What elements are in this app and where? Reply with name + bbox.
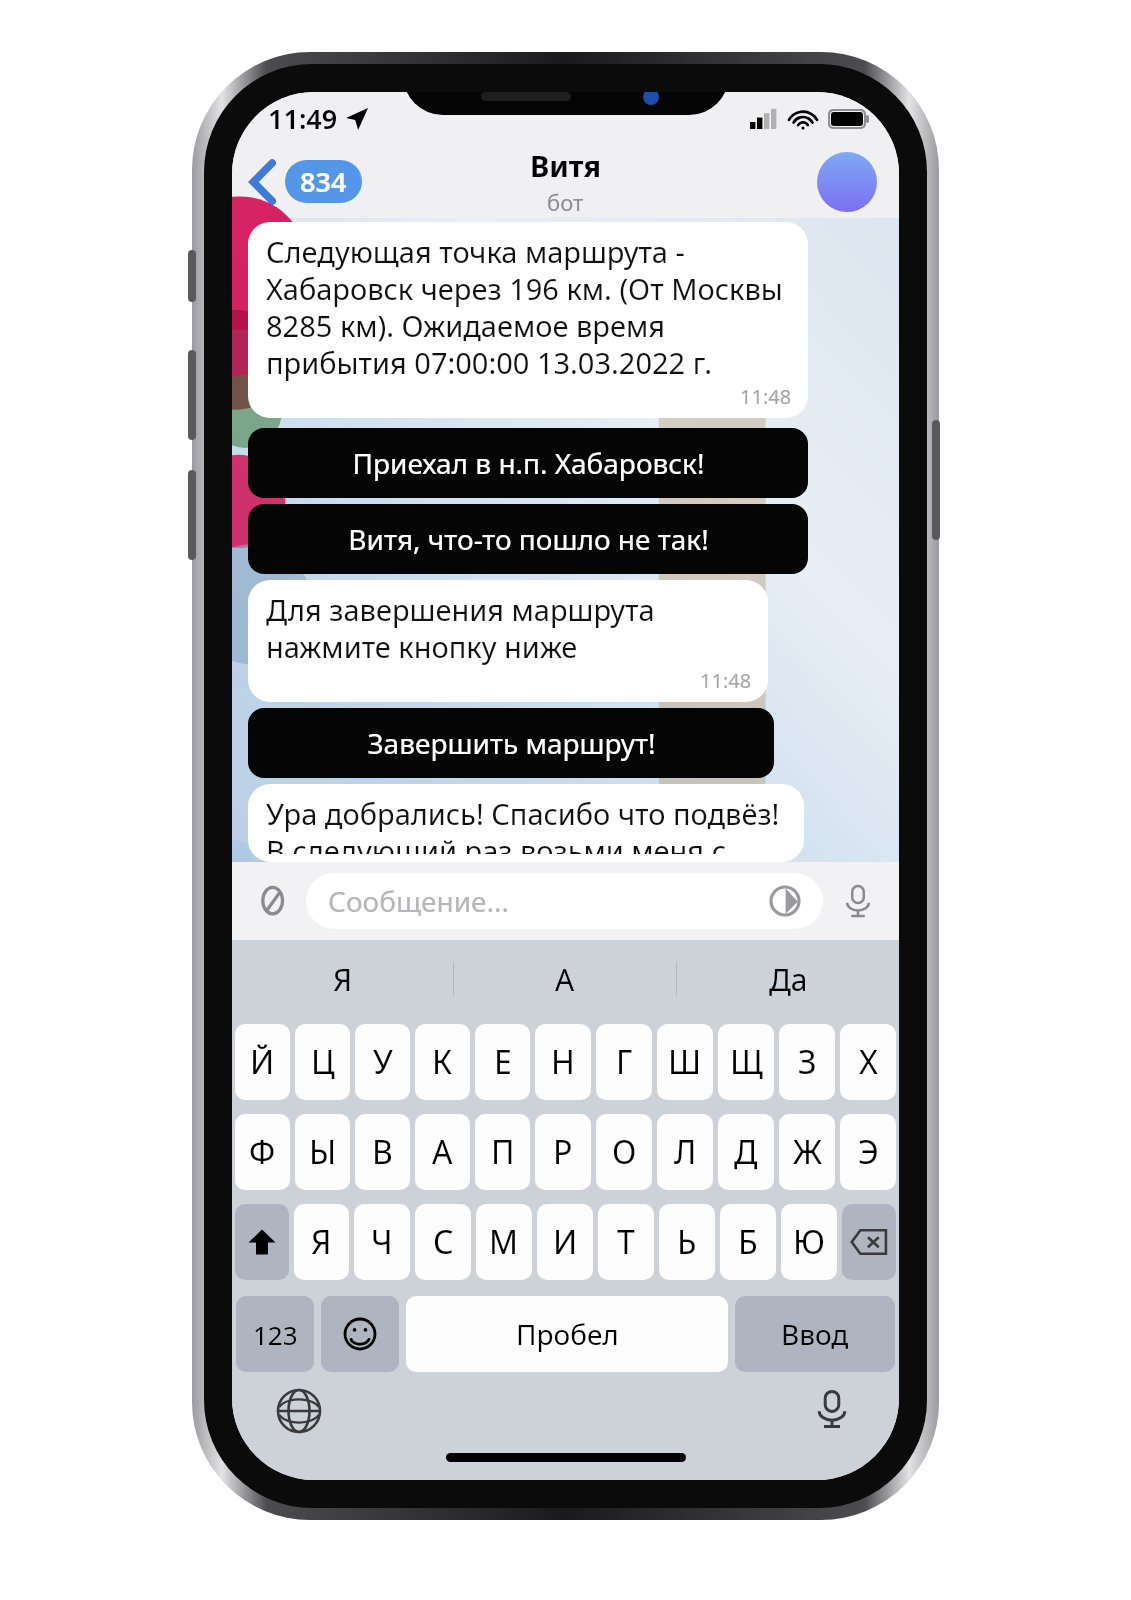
button[interactable]: З	[779, 1024, 835, 1100]
button[interactable]: Б	[720, 1204, 776, 1280]
staticText: Л	[674, 1130, 697, 1174]
button[interactable]: Сменить язык	[276, 1388, 322, 1434]
button[interactable]: Т	[598, 1204, 654, 1280]
button[interactable]: Ввод	[735, 1296, 895, 1372]
button[interactable]: О	[596, 1114, 652, 1190]
button[interactable]: Щ	[718, 1024, 774, 1100]
button[interactable]: Витя, что-то пошло не так!	[248, 504, 808, 574]
staticText: 834	[300, 163, 347, 200]
button[interactable]: Удалить	[842, 1204, 896, 1280]
button[interactable]: Ю	[781, 1204, 837, 1280]
button[interactable]: Завершить маршрут!	[248, 708, 774, 778]
staticText: В	[372, 1130, 393, 1174]
staticText: Следующая точка маршрута - Хабаровск чер…	[266, 232, 792, 383]
staticText: Э	[858, 1130, 879, 1174]
button[interactable]: А	[415, 1114, 470, 1190]
button[interactable]: Д	[718, 1114, 774, 1190]
button[interactable]: Следующая точка маршрута - Хабаровск чер…	[248, 222, 808, 418]
staticText: Н	[551, 1040, 575, 1084]
button[interactable]: Ы	[295, 1114, 350, 1190]
button[interactable]: Ура добрались! Спасибо что подвёз! В сле…	[248, 784, 804, 862]
staticText: Ш	[668, 1040, 702, 1084]
button[interactable]: Ф	[235, 1114, 290, 1190]
button[interactable]: 123	[236, 1296, 314, 1372]
button[interactable]: Я	[294, 1204, 349, 1280]
staticText: 11:49	[268, 100, 338, 137]
staticText: Щ	[730, 1040, 763, 1084]
staticText: 11:48	[700, 667, 752, 694]
button[interactable]: С	[415, 1204, 471, 1280]
button[interactable]: Профиль	[817, 152, 877, 212]
button[interactable]: И	[537, 1204, 593, 1280]
button[interactable]: Ч	[354, 1204, 410, 1280]
staticText: 11:48	[740, 383, 792, 410]
button[interactable]: Г	[596, 1024, 652, 1100]
staticText: Х	[859, 1040, 878, 1084]
button[interactable]: Да	[677, 940, 899, 1018]
button[interactable]: Эмодзи	[321, 1296, 399, 1372]
staticText: Ы	[309, 1130, 337, 1174]
staticText: Я	[333, 959, 353, 1000]
button[interactable]: Р	[535, 1114, 591, 1190]
staticText: П	[491, 1130, 515, 1174]
button[interactable]: Ж	[779, 1114, 835, 1190]
staticText: 123	[253, 1317, 298, 1352]
staticText: Приехал в н.п. Хабаровск!	[352, 444, 705, 482]
staticText: Й	[250, 1040, 275, 1084]
staticText: М	[489, 1220, 519, 1264]
staticText: З	[798, 1040, 817, 1084]
button[interactable]: Сообщение...	[306, 873, 823, 929]
staticText: Ввод	[781, 1315, 849, 1353]
button[interactable]: Е	[475, 1024, 530, 1100]
staticText: Витя, что-то пошло не так!	[348, 520, 709, 558]
button[interactable]: Й	[235, 1024, 290, 1100]
staticText: Да	[769, 959, 808, 1000]
button[interactable]: Л	[657, 1114, 713, 1190]
button[interactable]: Пробел	[406, 1296, 728, 1372]
button[interactable]: Ш	[657, 1024, 713, 1100]
button[interactable]: Ц	[295, 1024, 350, 1100]
button[interactable]: Для завершения маршрута нажмите кнопку н…	[248, 580, 768, 702]
button[interactable]: В	[355, 1114, 410, 1190]
button[interactable]: Н	[535, 1024, 591, 1100]
button[interactable]: Ь	[659, 1204, 715, 1280]
staticText: Пробел	[516, 1315, 619, 1353]
staticText: Для завершения маршрута нажмите кнопку н…	[266, 590, 752, 667]
staticText: Ц	[311, 1040, 335, 1084]
button[interactable]: Э	[840, 1114, 896, 1190]
staticText: У	[373, 1040, 393, 1084]
staticText: Е	[494, 1040, 512, 1084]
button[interactable]: 834	[246, 154, 368, 209]
staticText: Завершить маршрут!	[367, 724, 656, 762]
staticText: А	[555, 959, 575, 1000]
button[interactable]: Диктовка	[809, 1386, 855, 1432]
staticText: К	[432, 1040, 453, 1084]
staticText: Витя	[530, 146, 601, 185]
staticText: И	[553, 1220, 578, 1264]
button[interactable]: Shift	[235, 1204, 289, 1280]
staticText: Р	[553, 1130, 573, 1174]
other: Стикеры	[769, 885, 801, 917]
staticText: бот	[547, 187, 584, 217]
button[interactable]: М	[476, 1204, 532, 1280]
staticText: Ь	[677, 1220, 697, 1264]
staticText: Г	[616, 1040, 633, 1084]
staticText: Сообщение...	[328, 882, 509, 920]
button[interactable]: Голосовое сообщение	[835, 878, 881, 924]
staticText: Ф	[249, 1130, 276, 1174]
button[interactable]: Х	[840, 1024, 896, 1100]
button[interactable]: Приехал в н.п. Хабаровск!	[248, 428, 808, 498]
button[interactable]: А	[454, 940, 676, 1018]
button[interactable]: П	[475, 1114, 530, 1190]
staticText: А	[432, 1130, 453, 1174]
button[interactable]: Я	[232, 940, 453, 1018]
button[interactable]: К	[415, 1024, 470, 1100]
staticText: Ж	[793, 1130, 822, 1174]
button[interactable]: У	[355, 1024, 410, 1100]
staticText: О	[612, 1130, 637, 1174]
staticText: Ура добрались! Спасибо что подвёз! В сле…	[266, 794, 788, 854]
staticText: С	[433, 1220, 454, 1264]
button[interactable]: Прикрепить	[250, 878, 296, 924]
staticText: Т	[617, 1220, 635, 1264]
staticText: Я	[311, 1220, 332, 1264]
